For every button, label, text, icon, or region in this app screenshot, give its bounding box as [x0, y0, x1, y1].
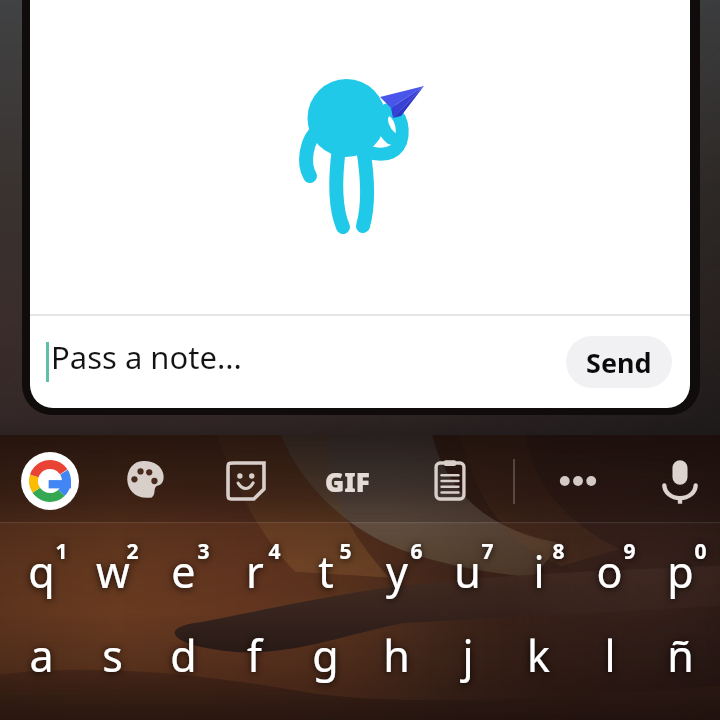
staticText: o — [596, 542, 623, 601]
button[interactable]: Send — [566, 336, 672, 388]
button[interactable]: d — [148, 618, 219, 692]
button[interactable]: ñ — [645, 618, 716, 692]
button[interactable]: i — [503, 495, 574, 605]
staticText: 3 — [197, 537, 210, 566]
button[interactable]: g — [290, 618, 361, 692]
button[interactable]: o — [574, 495, 645, 605]
staticText: GIF — [325, 464, 370, 499]
staticText: Pass a note... — [51, 336, 242, 378]
button[interactable]: GIF — [318, 452, 376, 510]
button[interactable]: e — [148, 495, 219, 605]
button[interactable]: l — [574, 618, 645, 692]
staticText: p — [667, 542, 694, 601]
button[interactable]: Clipboard — [421, 452, 479, 510]
button[interactable]: k — [503, 618, 574, 692]
staticText: j — [462, 626, 474, 685]
button[interactable]: j — [432, 618, 503, 692]
button[interactable]: Themes — [115, 452, 173, 510]
button[interactable]: Voice input — [651, 452, 709, 510]
staticText: 8 — [552, 537, 565, 566]
button[interactable]: u — [432, 495, 503, 605]
staticText: f — [247, 626, 262, 685]
staticText: k — [527, 626, 550, 685]
button[interactable]: Google search — [21, 452, 79, 510]
button[interactable]: s — [77, 618, 148, 692]
staticText: ñ — [667, 626, 694, 685]
staticText: 4 — [268, 537, 281, 566]
staticText: Send — [586, 344, 652, 381]
staticText: h — [383, 626, 410, 685]
staticText: s — [102, 626, 123, 685]
staticText: 2 — [126, 537, 139, 566]
staticText: a — [29, 626, 54, 685]
button[interactable]: q — [6, 495, 77, 605]
staticText: g — [312, 626, 339, 685]
button[interactable]: y — [361, 495, 432, 605]
button[interactable]: More options — [549, 452, 607, 510]
button[interactable]: t — [290, 495, 361, 605]
staticText: 5 — [339, 537, 352, 566]
staticText: 9 — [623, 537, 636, 566]
button[interactable]: a — [6, 618, 77, 692]
button[interactable]: h — [361, 618, 432, 692]
staticText: q — [28, 542, 55, 601]
button[interactable]: f — [219, 618, 290, 692]
staticText: y — [386, 542, 408, 601]
staticText: 1 — [55, 537, 68, 566]
staticText: 0 — [694, 537, 707, 566]
button[interactable]: p — [645, 495, 716, 605]
button[interactable]: Stickers — [217, 452, 275, 510]
staticText: e — [171, 542, 196, 601]
staticText: 6 — [410, 537, 423, 566]
staticText: w — [96, 542, 130, 601]
staticText: t — [318, 542, 334, 601]
staticText: r — [246, 542, 264, 601]
button[interactable]: r — [219, 495, 290, 605]
staticText: u — [454, 542, 481, 601]
button[interactable]: w — [77, 495, 148, 605]
staticText: 7 — [481, 537, 494, 566]
staticText: i — [533, 542, 545, 601]
staticText: d — [170, 626, 197, 685]
staticText: l — [604, 626, 616, 685]
